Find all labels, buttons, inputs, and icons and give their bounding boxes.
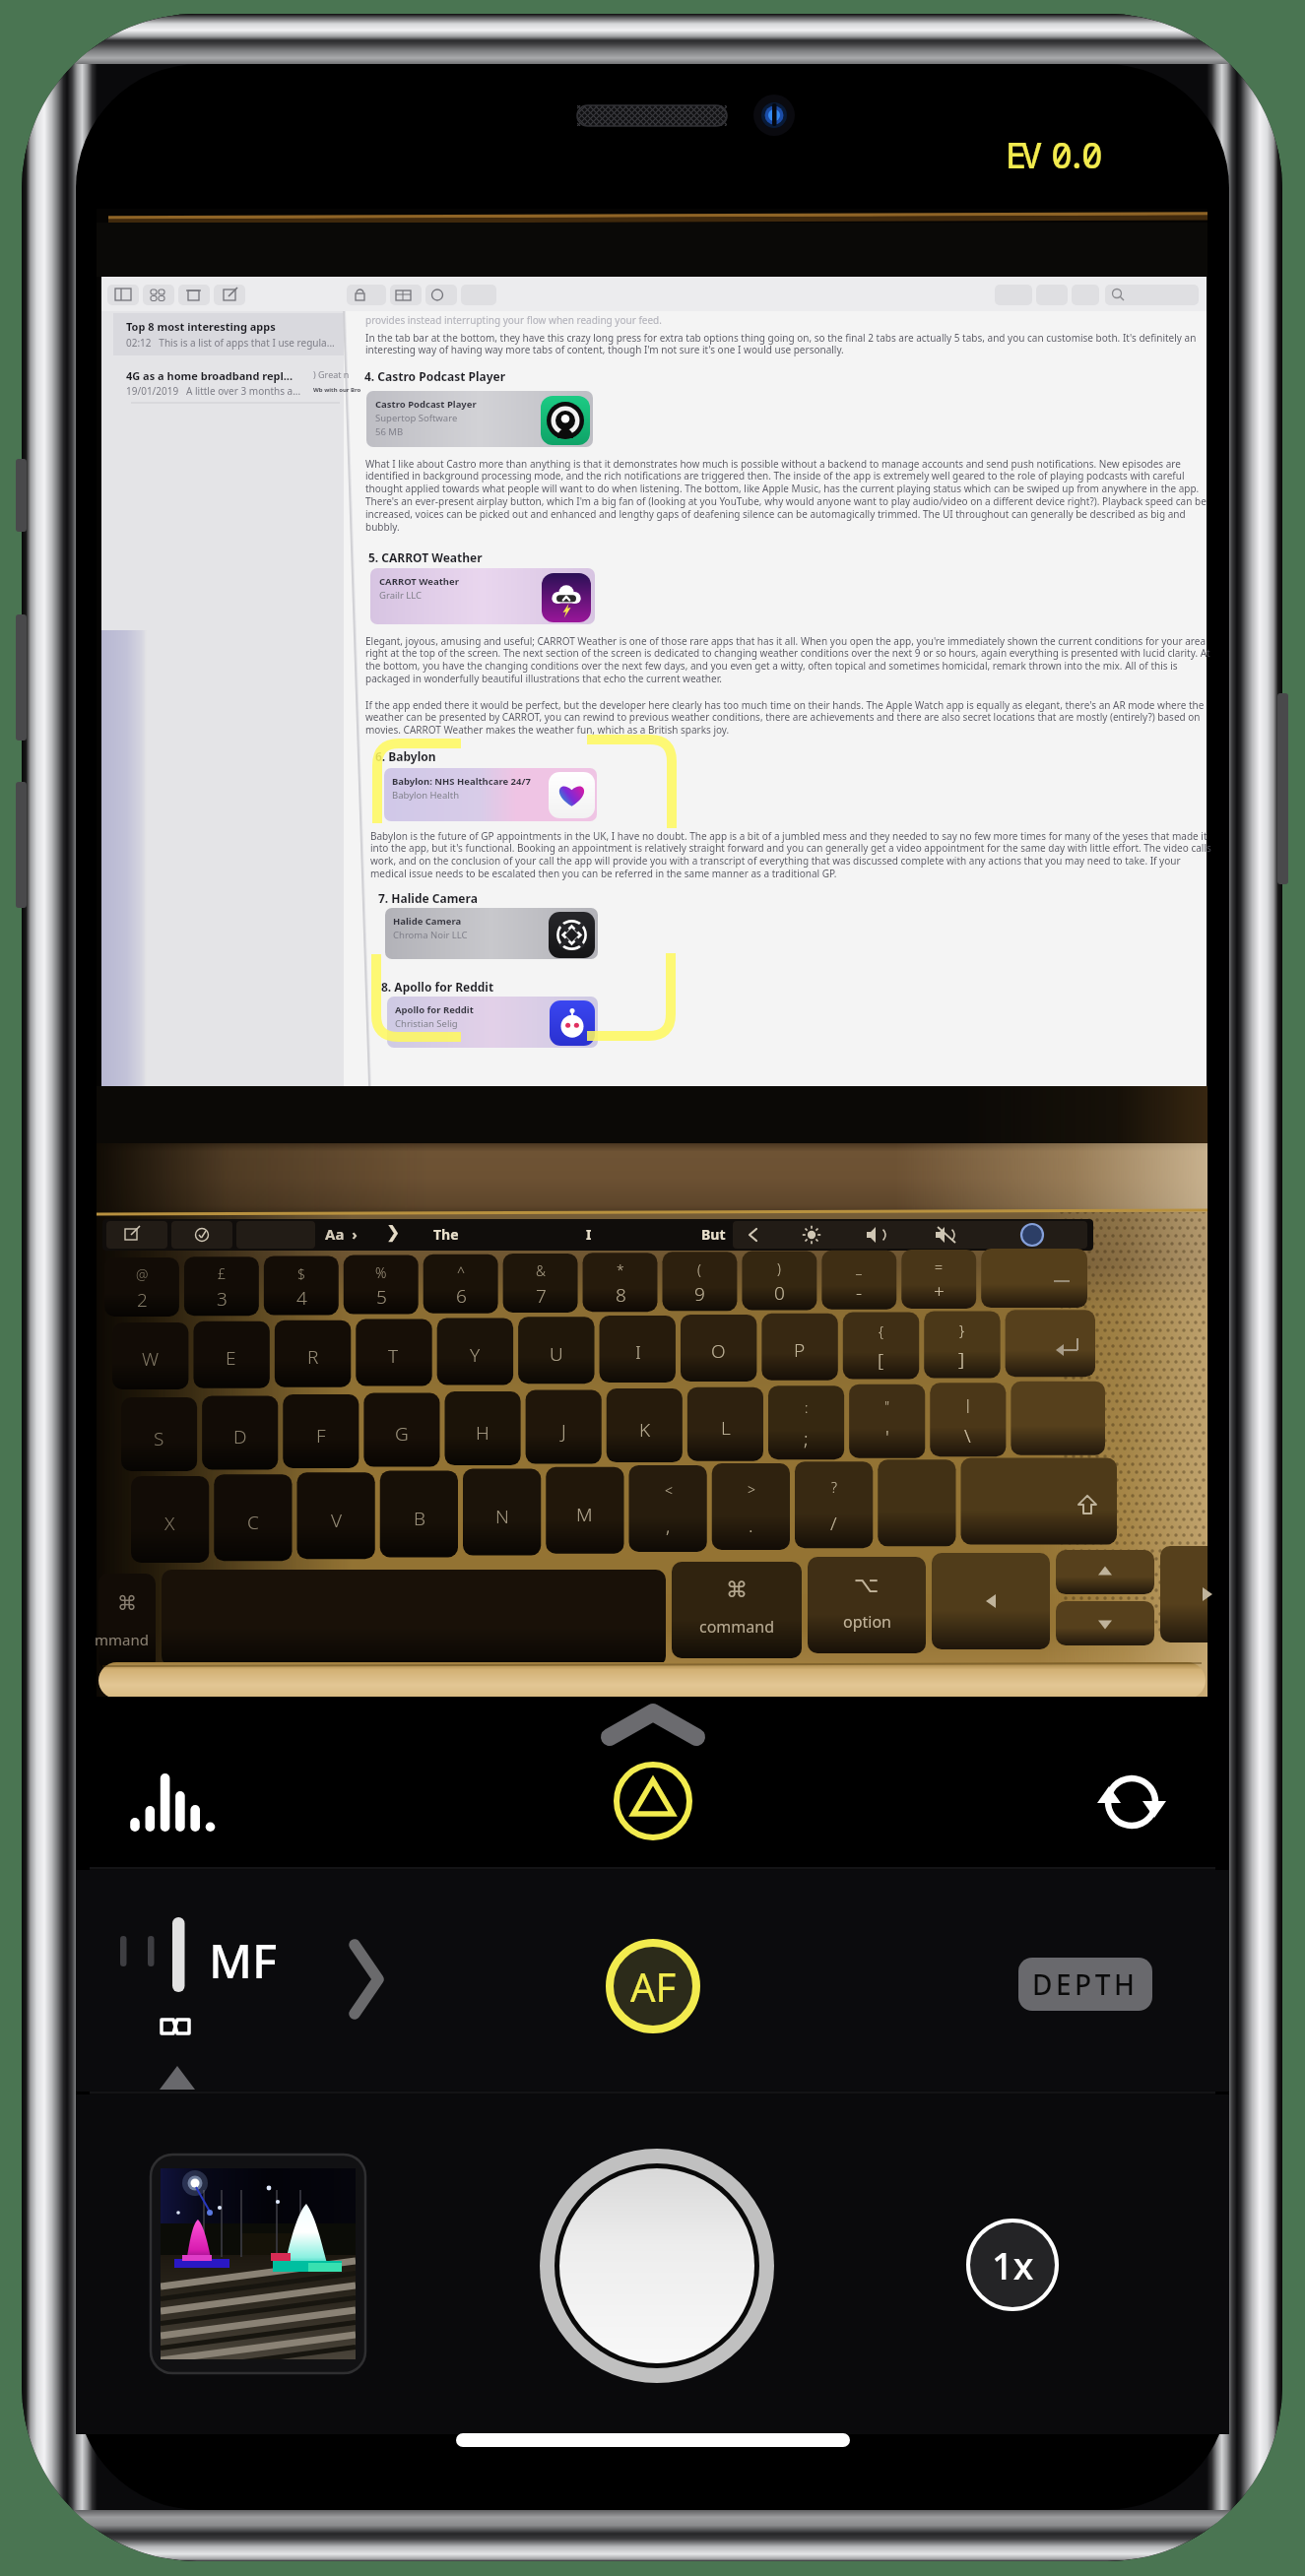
staticText: MF [209,1928,278,1992]
staticText: 56 MB [375,425,404,438]
staticText: 8 [616,1282,626,1308]
staticText: 4 [296,1285,307,1311]
staticText: Top 8 most interesting apps [126,319,276,334]
staticText: But [701,1225,726,1244]
staticText: 4. Castro Podcast Player [364,368,506,384]
staticText: provides instead interrupting your flow … [365,313,662,327]
staticText: Babylon Health [392,789,460,802]
staticText: EV 0.0 [1006,131,1097,179]
button[interactable]: Shutter [539,2148,775,2384]
staticText: \ [964,1423,971,1449]
button[interactable]: More focus options [339,1932,398,2027]
staticText: Wb with our Bro [313,386,361,394]
staticText: O [711,1338,726,1364]
staticText: F [316,1423,326,1449]
staticText: I [635,1339,641,1365]
staticText: H [476,1420,489,1446]
button[interactable]: DEPTH [1018,1958,1152,2011]
staticText: Babylon is the future of GP appointments… [370,829,1212,880]
button[interactable]: Photo library [150,2154,366,2374]
staticText: In the tab bar at the bottom, they have … [365,331,1212,356]
staticText: P [794,1337,806,1363]
staticText: J [561,1418,566,1444]
staticText: @ [136,1265,149,1284]
staticText: £ [218,1264,226,1283]
staticText: G [395,1421,409,1447]
staticText: 1x [992,2239,1034,2290]
staticText: 6. Babylon [375,748,436,764]
staticText: = [935,1257,943,1276]
staticText: ⌘ [726,1578,748,1603]
staticText: 0 [774,1280,785,1306]
staticText: ; [804,1426,809,1451]
staticText: option [843,1611,891,1633]
staticText: U [550,1341,563,1367]
button[interactable]: Capture format [611,1759,695,1843]
staticText: } [959,1321,965,1340]
staticText: N [495,1504,509,1529]
staticText: . [749,1513,753,1538]
staticText: AF [630,1960,677,2013]
staticText: Christian Selig [395,1017,458,1030]
staticText: mmand [95,1630,149,1649]
staticText: T [388,1343,399,1369]
staticText: 6 [456,1283,467,1309]
staticText: K [639,1417,651,1443]
staticText: & [536,1261,547,1280]
staticText: _ [856,1258,862,1277]
staticText: Halide Camera [393,915,462,928]
staticText: L [721,1415,731,1441]
staticText: ❯ [386,1222,401,1242]
button[interactable]: Switch camera [1090,1761,1173,1843]
staticText: 9 [694,1281,705,1307]
staticText: Babylon: NHS Healthcare 24/7 [392,775,531,788]
staticText: 7. Halide Camera [378,890,478,906]
staticText: - [856,1279,863,1305]
staticText: I [586,1225,592,1244]
staticText: ⌥ [854,1573,880,1598]
staticText: 7 [536,1283,547,1309]
staticText: If the app ended there it would be perfe… [365,698,1212,737]
staticText: Castro Podcast Player [375,398,477,411]
button[interactable]: Histogram [116,1753,225,1843]
staticText: B [414,1506,425,1531]
staticText: W [142,1346,160,1372]
button[interactable]: Autofocus [602,1935,704,2037]
staticText: command [699,1616,774,1638]
staticText: V [331,1508,343,1533]
staticText: DEPTH [1032,1965,1139,2003]
staticText: C [247,1510,259,1535]
staticText: ^ [457,1262,465,1281]
staticText: Grailr LLC [379,589,423,602]
staticText: X [164,1511,175,1536]
button[interactable]: Expand controls [601,1704,705,1749]
staticText: What I like about Castro more than anyth… [365,457,1212,534]
staticText: S [154,1426,164,1451]
staticText: [ [878,1347,884,1373]
staticText: < [665,1481,673,1500]
button[interactable]: Manual focus [108,1900,364,2093]
staticText: D [233,1424,247,1449]
staticText: 2 [137,1287,148,1313]
staticText: 5 [376,1284,387,1310]
staticText: ] [958,1346,965,1372]
staticText: 8. Apollo for Reddit [381,979,494,995]
staticText: 4G as a home broadband repl... [126,368,294,383]
staticText: : [805,1398,809,1417]
staticText: 19/01/2019 A little over 3 months a... [126,384,301,398]
staticText: Elegant, joyous, amusing and useful; CAR… [365,634,1212,685]
staticText: The [433,1225,459,1244]
staticText: ? [831,1478,837,1497]
staticText: ( [697,1260,701,1279]
staticText: 3 [217,1286,228,1312]
staticText: | [964,1395,972,1414]
staticText: % [375,1263,387,1282]
staticText: 02:12 This is a list of apps that I use … [126,336,335,350]
staticText: " [884,1397,890,1416]
staticText: / [830,1511,837,1536]
staticText: E [226,1345,236,1371]
staticText: $ [297,1264,305,1283]
staticText: Chroma Noir LLC [393,929,468,941]
button[interactable]: Exposure compensation [1006,131,1097,179]
button[interactable]: 1x [965,2218,1060,2312]
